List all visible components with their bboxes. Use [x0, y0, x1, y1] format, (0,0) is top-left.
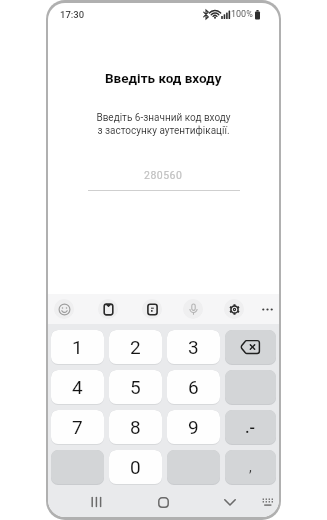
button[interactable]: 1: [51, 330, 104, 364]
button[interactable]: [225, 330, 276, 364]
button[interactable]: [98, 299, 118, 319]
staticText: ,: [249, 459, 252, 475]
button[interactable]: [219, 491, 241, 513]
staticText: Введіть код входу: [105, 70, 222, 86]
button[interactable]: [152, 491, 174, 513]
button[interactable]: 4: [51, 370, 104, 404]
button[interactable]: [142, 299, 162, 319]
staticText: .-: [245, 418, 256, 437]
button[interactable]: 0: [109, 450, 162, 484]
staticText: 6: [188, 376, 199, 398]
button[interactable]: 2: [109, 330, 162, 364]
button[interactable]: ,: [225, 450, 276, 484]
staticText: 280560: [144, 169, 183, 181]
button[interactable]: [183, 299, 203, 319]
button[interactable]: 7: [51, 410, 104, 444]
staticText: 2: [130, 336, 141, 358]
button[interactable]: [86, 491, 108, 513]
staticText: 5: [130, 376, 141, 398]
button[interactable]: .-: [225, 410, 276, 444]
staticText: 4: [72, 376, 83, 398]
button[interactable]: 3: [167, 330, 220, 364]
staticText: 100%: [231, 9, 253, 20]
button[interactable]: [257, 299, 277, 319]
button[interactable]: 9: [167, 410, 220, 444]
staticText: 3: [188, 336, 199, 358]
button[interactable]: [54, 299, 74, 319]
staticText: 1: [72, 336, 83, 358]
button[interactable]: 8: [109, 410, 162, 444]
button[interactable]: 6: [167, 370, 220, 404]
staticText: 9: [188, 416, 199, 438]
button[interactable]: [257, 491, 279, 513]
staticText: 0: [130, 456, 141, 478]
button[interactable]: 5: [109, 370, 162, 404]
staticText: 8: [130, 416, 141, 438]
staticText: Введіть 6-значний код входу з застосунку…: [96, 112, 231, 137]
staticText: 17:30: [60, 9, 85, 20]
staticText: 7: [72, 416, 83, 438]
button[interactable]: [224, 299, 244, 319]
